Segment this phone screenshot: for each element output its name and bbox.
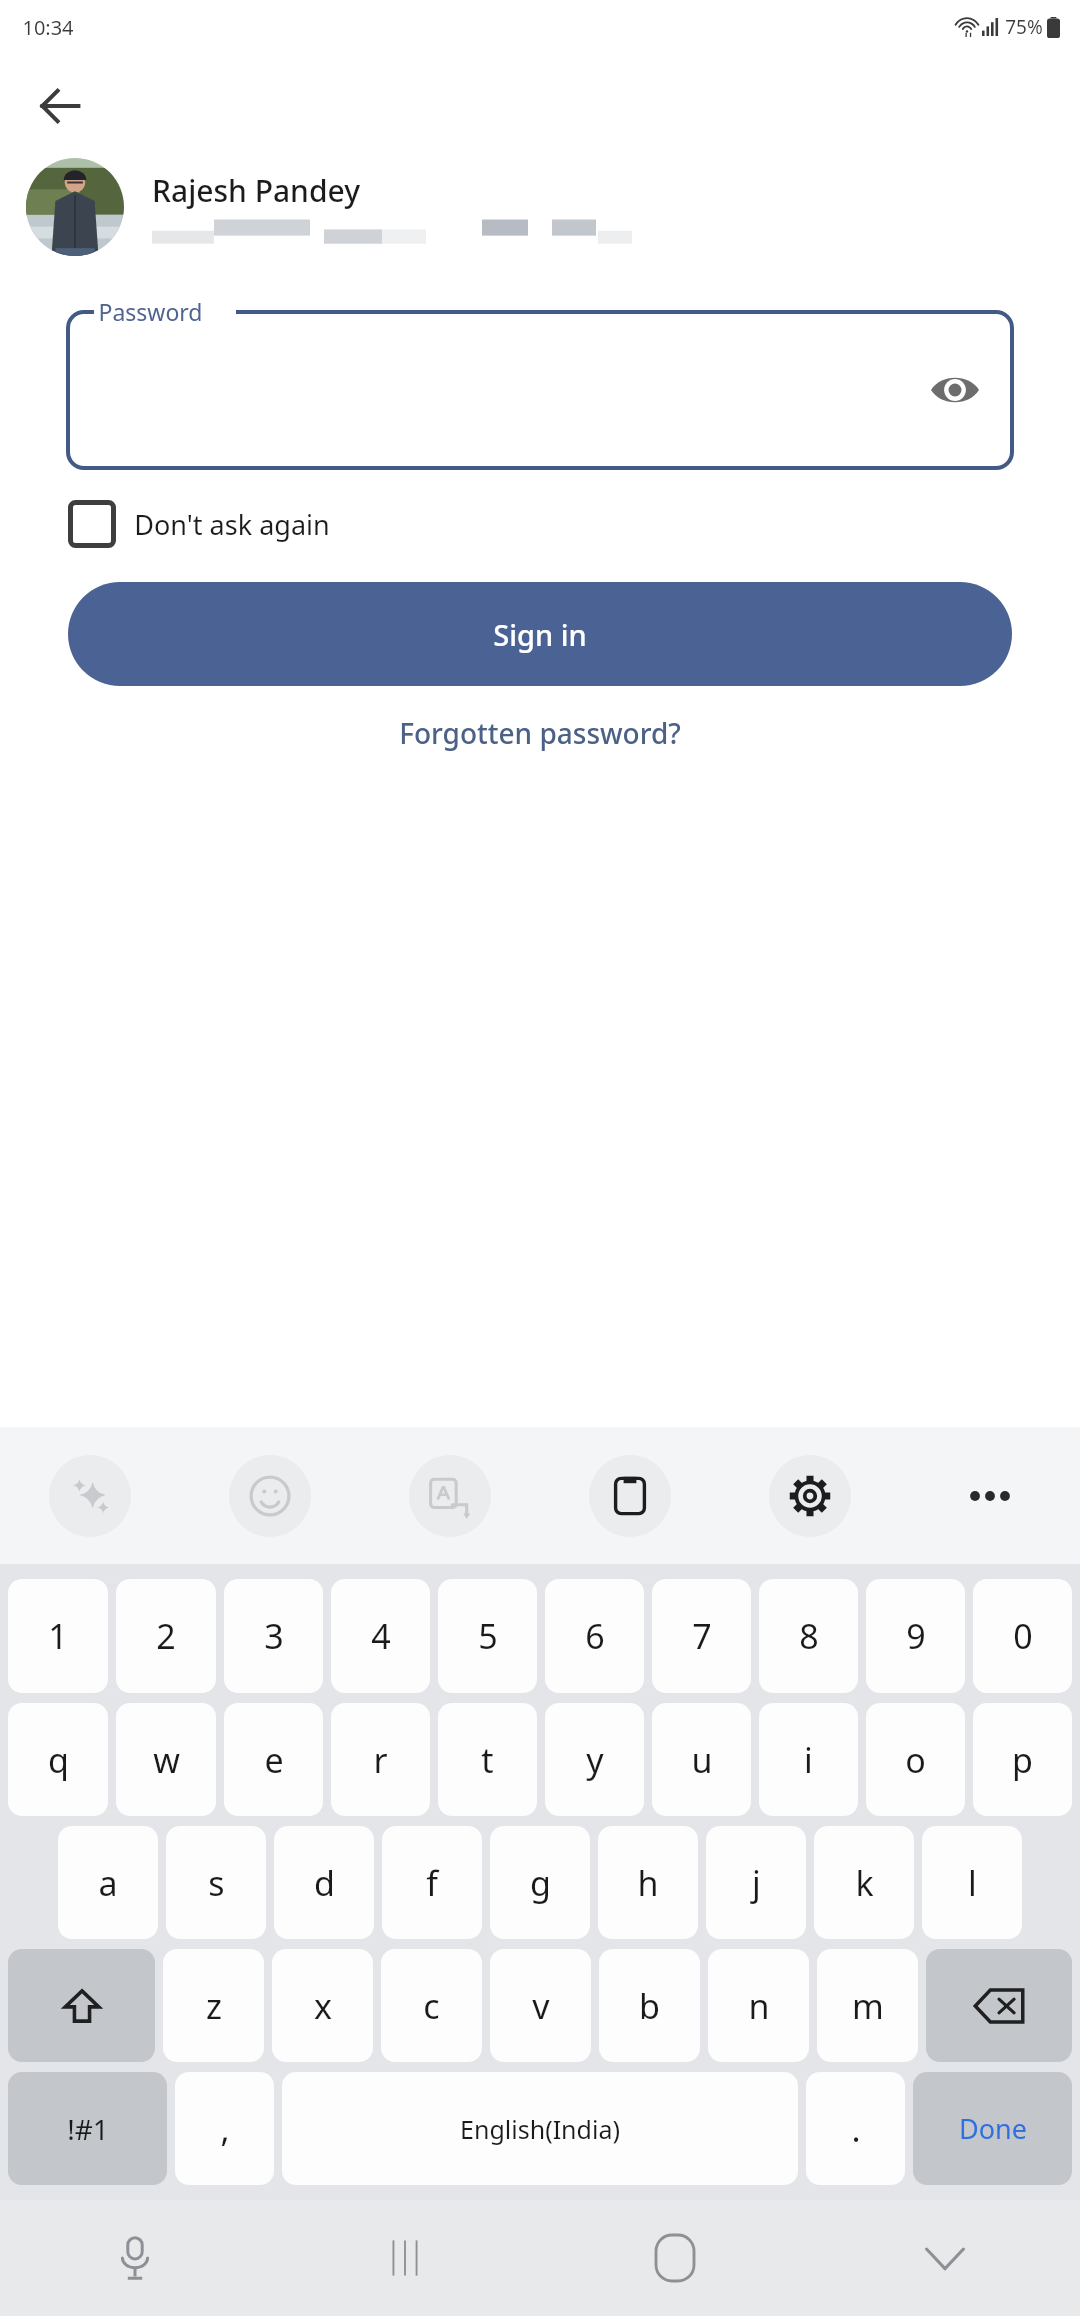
staticText: 1 <box>48 1613 68 1659</box>
staticText: a <box>98 1860 118 1906</box>
button[interactable]: . <box>806 2072 905 2185</box>
button[interactable]: d <box>274 1826 374 1939</box>
button[interactable]: Backspace <box>926 1949 1072 2062</box>
staticText: q <box>48 1737 69 1783</box>
staticText: z <box>206 1983 222 2029</box>
button[interactable]: Sign in <box>68 582 1012 686</box>
button[interactable]: b <box>599 1949 700 2062</box>
staticText: 7 <box>692 1613 712 1659</box>
button[interactable]: , <box>175 2072 274 2185</box>
button[interactable]: v <box>490 1949 591 2062</box>
button[interactable]: i <box>759 1703 858 1816</box>
button[interactable]: Password <box>68 296 1012 468</box>
button[interactable]: c <box>381 1949 482 2062</box>
staticText: p <box>1012 1737 1033 1783</box>
button[interactable]: Voice input <box>0 2200 270 2316</box>
button[interactable]: 8 <box>759 1579 858 1693</box>
button[interactable]: 6 <box>545 1579 644 1693</box>
button[interactable]: Clipboard <box>540 1427 720 1564</box>
staticText: . <box>851 2106 861 2152</box>
button[interactable]: More <box>900 1427 1080 1564</box>
button[interactable]: h <box>598 1826 698 1939</box>
button[interactable]: 5 <box>438 1579 537 1693</box>
staticText: i <box>804 1737 813 1783</box>
button[interactable]: u <box>652 1703 751 1816</box>
button[interactable]: Settings <box>720 1427 900 1564</box>
staticText: j <box>752 1860 761 1906</box>
staticText: 9 <box>906 1613 926 1659</box>
button[interactable]: !#1 <box>8 2072 167 2185</box>
button[interactable]: 9 <box>866 1579 965 1693</box>
button[interactable]: Don't ask again <box>68 488 1012 560</box>
staticText: g <box>530 1860 551 1906</box>
staticText: 0 <box>1013 1613 1033 1659</box>
staticText: s <box>208 1860 225 1906</box>
button[interactable]: p <box>973 1703 1072 1816</box>
staticText: y <box>586 1737 604 1783</box>
button[interactable]: y <box>545 1703 644 1816</box>
staticText: m <box>852 1983 884 2029</box>
button[interactable]: f <box>382 1826 482 1939</box>
staticText: r <box>373 1737 388 1783</box>
staticText: v <box>532 1983 550 2029</box>
staticText: b <box>639 1983 660 2029</box>
staticText: h <box>637 1860 659 1906</box>
staticText: d <box>314 1860 335 1906</box>
button[interactable]: k <box>814 1826 914 1939</box>
staticText: 4 <box>371 1613 391 1659</box>
staticText: 10:34 <box>22 14 74 41</box>
button[interactable]: 1 <box>8 1579 108 1693</box>
button[interactable]: r <box>331 1703 430 1816</box>
staticText: Done <box>959 2110 1027 2147</box>
button[interactable]: Recents <box>270 2200 540 2316</box>
button[interactable]: Hide keyboard <box>810 2200 1080 2316</box>
button[interactable]: a <box>58 1826 158 1939</box>
button[interactable]: 3 <box>224 1579 323 1693</box>
button[interactable]: 2 <box>116 1579 216 1693</box>
button[interactable]: j <box>706 1826 806 1939</box>
button[interactable]: g <box>490 1826 590 1939</box>
button[interactable]: Done <box>913 2072 1072 2185</box>
staticText: Sign in <box>493 615 587 654</box>
staticText: 2 <box>156 1613 176 1659</box>
button[interactable]: Show password <box>928 363 982 417</box>
staticText: k <box>855 1860 874 1906</box>
button[interactable]: 0 <box>973 1579 1072 1693</box>
button[interactable]: 7 <box>652 1579 751 1693</box>
button[interactable]: Translate <box>360 1427 540 1564</box>
staticText: 8 <box>799 1613 819 1659</box>
button[interactable]: x <box>272 1949 373 2062</box>
staticText: !#1 <box>67 2110 109 2148</box>
staticText: English(India) <box>460 2112 620 2146</box>
button[interactable]: n <box>708 1949 809 2062</box>
staticText: f <box>426 1860 438 1906</box>
button[interactable]: s <box>166 1826 266 1939</box>
staticText: 3 <box>264 1613 284 1659</box>
button[interactable]: 4 <box>331 1579 430 1693</box>
button[interactable]: Shift <box>8 1949 155 2062</box>
button[interactable]: Sparkle <box>0 1427 180 1564</box>
button[interactable]: m <box>817 1949 918 2062</box>
button[interactable]: e <box>224 1703 323 1816</box>
staticText: 6 <box>585 1613 605 1659</box>
staticText: Password <box>98 296 203 327</box>
staticText: l <box>968 1860 977 1906</box>
staticText: w <box>153 1737 180 1783</box>
staticText: 5 <box>478 1613 498 1659</box>
staticText: t <box>481 1737 494 1783</box>
button[interactable]: l <box>922 1826 1022 1939</box>
button[interactable]: English(India) <box>282 2072 798 2185</box>
button[interactable]: Emoji <box>180 1427 360 1564</box>
staticText: e <box>264 1737 284 1783</box>
button[interactable]: z <box>163 1949 264 2062</box>
staticText: Rajesh Pandey <box>152 170 360 211</box>
button[interactable]: Forgotten password? <box>383 706 697 760</box>
button[interactable]: t <box>438 1703 537 1816</box>
button[interactable]: q <box>8 1703 108 1816</box>
staticText: Don't ask again <box>134 506 330 543</box>
button[interactable]: Home <box>540 2200 810 2316</box>
button[interactable]: o <box>866 1703 965 1816</box>
button[interactable]: w <box>116 1703 216 1816</box>
staticText: , <box>220 2106 230 2152</box>
button[interactable]: Back <box>24 70 96 142</box>
